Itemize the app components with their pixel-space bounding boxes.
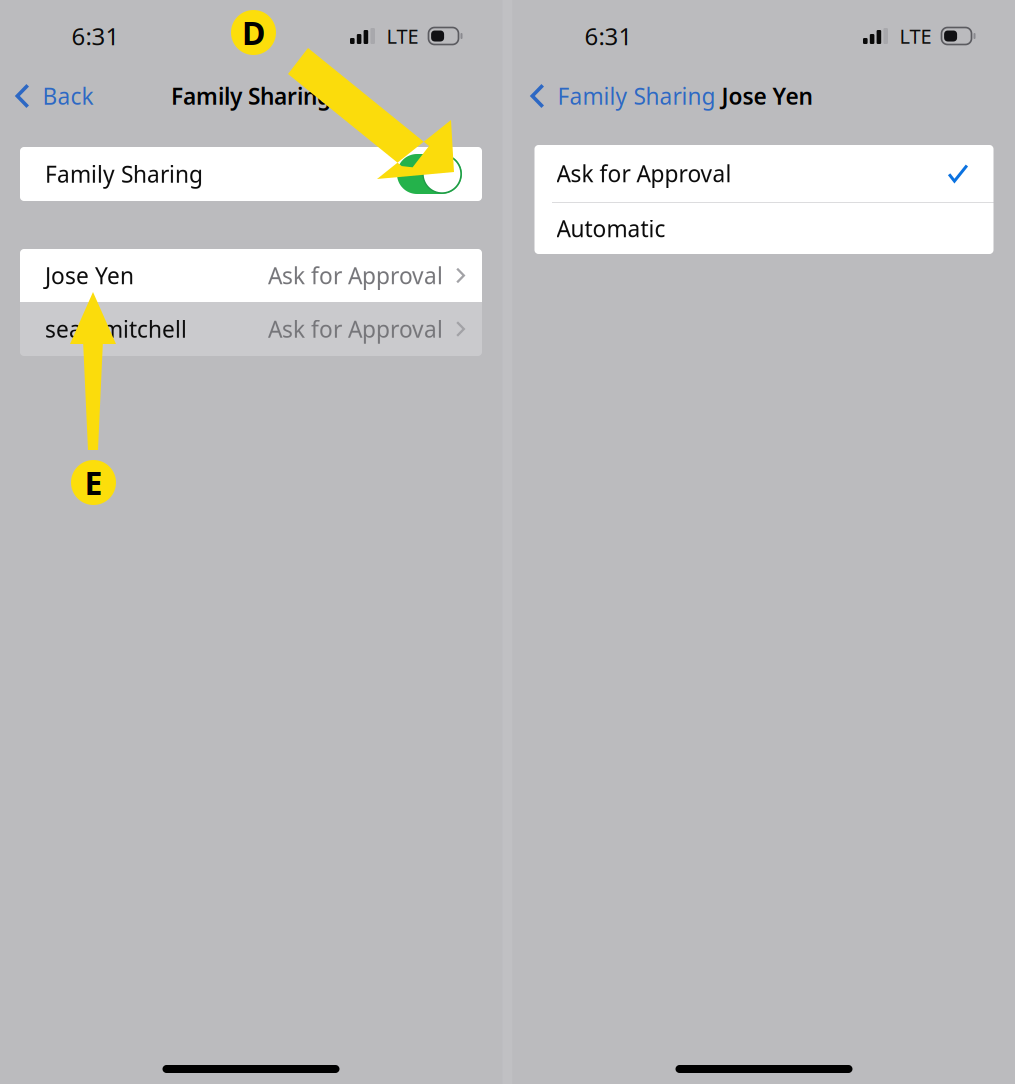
staticText: E (84, 461, 102, 504)
button[interactable]: Jose Yen (20, 249, 482, 302)
staticText: Family Sharing (45, 159, 203, 189)
button[interactable]: Ask for Approval (534, 145, 993, 202)
staticText: Family Sharing (557, 81, 715, 111)
staticText: Family Sharing (171, 81, 331, 111)
staticText: Back (42, 81, 93, 111)
staticText: Jose Yen (721, 81, 812, 111)
staticText: LTE (899, 23, 931, 49)
staticText: 6:31 (71, 20, 119, 52)
button[interactable]: Back to Family Sharing (511, 73, 715, 119)
staticText: Ask for Approval (268, 260, 443, 290)
staticText: sean mitchell (45, 314, 187, 344)
staticText: LTE (386, 23, 418, 49)
staticText: D (242, 11, 265, 54)
staticText: 6:31 (584, 20, 632, 52)
staticText: Automatic (556, 213, 665, 243)
staticText: Ask for Approval (556, 158, 731, 188)
button[interactable]: sean mitchell (20, 302, 482, 356)
staticText: Jose Yen (45, 260, 134, 290)
button[interactable]: Back (0, 73, 93, 119)
button[interactable]: Automatic (534, 203, 993, 254)
button[interactable]: Family Sharing, on (397, 154, 462, 194)
staticText: Ask for Approval (268, 314, 443, 344)
